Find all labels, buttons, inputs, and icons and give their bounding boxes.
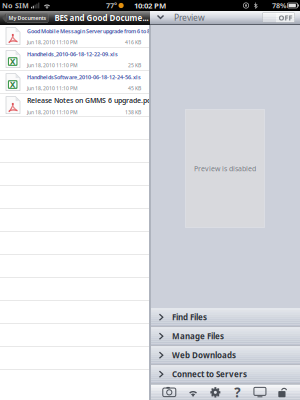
button[interactable]: X xyxy=(0,48,149,71)
button[interactable]: Web Downloads xyxy=(151,346,300,365)
staticText: Preview is disabled xyxy=(194,164,256,173)
button[interactable]: Settings xyxy=(210,387,221,398)
button[interactable]: Release Notes on GMMS 6 upgrade.pdf xyxy=(0,94,149,117)
button[interactable]: Display xyxy=(253,387,266,398)
button[interactable]: Manage Files xyxy=(151,327,300,346)
button[interactable]: My Documents xyxy=(2,13,48,23)
staticText: BES and Good Docume... xyxy=(54,13,148,23)
staticText: HandheldsSoftware_2010-06-18-12-24-56.xl… xyxy=(27,73,141,81)
staticText: 416 KB xyxy=(125,39,141,46)
staticText: Jun 18, 2010 11:10 PM xyxy=(27,39,78,46)
staticText: X xyxy=(10,79,16,90)
staticText: Release Notes on GMMS 6 upgrade.pdf xyxy=(27,95,154,105)
staticText: 77° xyxy=(106,1,117,10)
staticText: Preview xyxy=(174,12,205,23)
staticText: Web Downloads xyxy=(172,350,236,361)
staticText: My Documents xyxy=(8,14,46,22)
button[interactable]: Connect to Servers xyxy=(151,365,300,384)
staticText: 78% xyxy=(272,1,286,10)
staticText: Connect to Servers xyxy=(172,369,247,380)
button[interactable]: Good Mobile Messagin Server upgrade from… xyxy=(0,25,149,48)
button[interactable]: X xyxy=(0,71,149,94)
staticText: ? xyxy=(234,383,240,400)
staticText: 138 KB xyxy=(125,109,141,116)
staticText: Handhelds_2010-06-18-12-22-09.xls xyxy=(27,50,118,58)
button[interactable]: Camera xyxy=(162,387,176,398)
staticText: No SIM xyxy=(2,1,29,10)
staticText: Good Mobile Messagin Server upgrade from… xyxy=(27,27,156,35)
staticText: Jun 18, 2010 11:10 PM xyxy=(27,62,78,69)
staticText: Manage Files xyxy=(172,331,224,342)
staticText: Jun 18, 2010 11:10 PM xyxy=(27,85,78,92)
staticText: Jun 18, 2010 11:10 PM xyxy=(27,109,78,116)
button[interactable]: Unlock xyxy=(278,387,289,398)
button[interactable]: Network xyxy=(188,388,199,397)
button[interactable]: Preview enabled xyxy=(262,12,295,22)
button[interactable]: Help xyxy=(232,386,242,398)
staticText: 10:02 PM xyxy=(134,0,166,11)
staticText: 45 KB xyxy=(128,85,141,92)
button[interactable]: Find Files xyxy=(151,308,300,327)
staticText: X xyxy=(10,56,16,67)
staticText: OFF xyxy=(278,12,292,23)
staticText: Find Files xyxy=(172,312,207,323)
button[interactable]: Show documents xyxy=(156,11,164,24)
staticText: 25 KB xyxy=(128,62,141,69)
